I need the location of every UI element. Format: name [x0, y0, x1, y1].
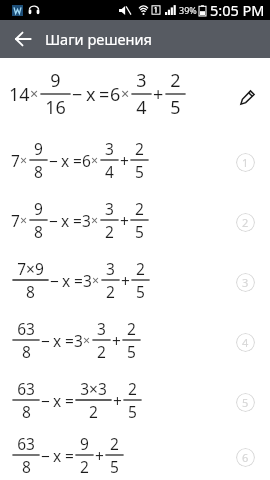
staticText: 5: [135, 161, 144, 182]
staticText: 1: [242, 155, 249, 170]
staticText: +: [95, 445, 104, 466]
staticText: 5:05 PM: [210, 0, 265, 20]
staticText: 3: [105, 198, 114, 219]
staticText: −: [50, 270, 59, 291]
staticText: 2: [105, 221, 114, 242]
staticText: 4: [105, 161, 114, 182]
staticText: −: [49, 150, 58, 171]
staticText: 3×3: [80, 378, 107, 399]
staticText: Шаги решения: [45, 29, 152, 49]
staticText: =: [74, 270, 83, 291]
staticText: +: [121, 270, 130, 291]
staticText: 5: [170, 95, 181, 120]
staticText: 2: [135, 198, 144, 219]
staticText: ×: [92, 272, 100, 289]
staticText: 2: [110, 433, 119, 454]
staticText: ×: [20, 152, 28, 169]
staticText: −: [41, 445, 50, 466]
staticText: −: [41, 390, 50, 411]
staticText: =: [65, 330, 74, 351]
staticText: 2: [128, 378, 137, 399]
staticText: 5: [127, 341, 136, 362]
staticText: 39%: [179, 4, 197, 16]
staticText: 7×9: [17, 258, 44, 279]
staticText: =: [65, 445, 74, 466]
staticText: 7: [11, 150, 20, 171]
staticText: 2: [89, 401, 98, 422]
staticText: =: [73, 210, 82, 231]
staticText: 8: [26, 281, 35, 302]
staticText: 2: [106, 281, 115, 302]
staticText: 9: [34, 198, 43, 219]
staticText: x: [86, 82, 96, 107]
staticText: 6: [110, 82, 121, 107]
staticText: ×: [30, 84, 39, 104]
staticText: 9: [80, 433, 89, 454]
staticText: 6: [242, 450, 249, 465]
button[interactable]: 63: [0, 310, 270, 370]
staticText: 6: [82, 150, 91, 171]
button[interactable]: Edit: [231, 81, 263, 113]
staticText: =: [73, 150, 82, 171]
staticText: +: [112, 330, 121, 351]
staticText: 3: [82, 210, 91, 231]
staticText: 3: [105, 138, 114, 159]
staticText: 8: [22, 341, 31, 362]
staticText: x: [53, 330, 62, 351]
button[interactable]: 6: [236, 448, 255, 467]
staticText: 3: [106, 258, 115, 279]
button[interactable]: 4: [236, 333, 255, 352]
staticText: 8: [34, 161, 43, 182]
button[interactable]: 7×9: [0, 250, 270, 310]
staticText: 2: [127, 318, 136, 339]
staticText: 8: [22, 401, 31, 422]
staticText: 2: [170, 68, 181, 93]
staticText: 63: [17, 433, 35, 454]
button[interactable]: 7: [0, 130, 270, 190]
staticText: ×: [91, 212, 99, 229]
staticText: 63: [17, 378, 35, 399]
staticText: 3: [74, 330, 83, 351]
button[interactable]: 3: [236, 273, 255, 292]
staticText: 4: [136, 95, 147, 120]
staticText: 2: [97, 341, 106, 362]
staticText: 2: [135, 138, 144, 159]
button[interactable]: 63: [0, 370, 270, 430]
staticText: 3: [136, 68, 147, 93]
staticText: +: [120, 210, 129, 231]
button[interactable]: 63: [0, 430, 270, 480]
staticText: x: [53, 445, 62, 466]
staticText: x: [61, 150, 70, 171]
staticText: 5: [242, 395, 249, 410]
button[interactable]: 7: [0, 190, 270, 250]
staticText: 16: [45, 95, 66, 120]
button[interactable]: 2: [236, 213, 255, 232]
staticText: x: [53, 390, 62, 411]
staticText: 63: [17, 318, 35, 339]
staticText: +: [153, 82, 164, 107]
staticText: 8: [22, 456, 31, 477]
staticText: 9: [50, 68, 61, 93]
staticText: 3: [83, 270, 92, 291]
staticText: +: [113, 390, 122, 411]
staticText: 2: [80, 456, 89, 477]
staticText: 3: [97, 318, 106, 339]
staticText: ×: [83, 332, 91, 349]
staticText: x: [62, 270, 71, 291]
staticText: x: [61, 210, 70, 231]
staticText: −: [41, 330, 50, 351]
staticText: 4: [242, 335, 249, 350]
staticText: 2: [242, 215, 249, 230]
button[interactable]: Back: [0, 20, 45, 58]
button[interactable]: 1: [236, 153, 255, 172]
staticText: 5: [135, 221, 144, 242]
staticText: 14: [9, 82, 30, 107]
staticText: 2: [136, 258, 145, 279]
staticText: 9: [34, 138, 43, 159]
staticText: 5: [136, 281, 145, 302]
staticText: 5: [128, 401, 137, 422]
staticText: =: [99, 82, 110, 107]
button[interactable]: 5: [236, 393, 255, 412]
staticText: ×: [121, 84, 130, 104]
staticText: 5: [110, 456, 119, 477]
